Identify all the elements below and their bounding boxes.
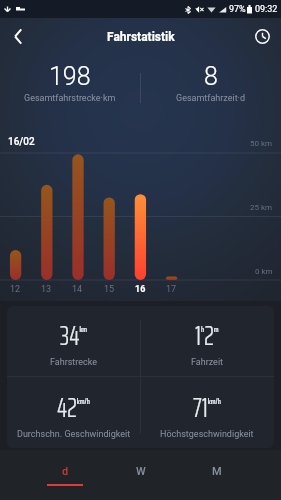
- staticText: 15: [104, 284, 115, 295]
- staticText: 34km: [60, 314, 88, 356]
- staticText: 8: [204, 62, 218, 91]
- staticText: 09:32: [255, 4, 278, 15]
- staticText: 25 km: [250, 203, 273, 212]
- staticText: Fahrstrecke: [50, 357, 98, 368]
- staticText: Gesamtfahrzeit·d: [176, 93, 246, 104]
- staticText: 14: [72, 284, 83, 295]
- staticText: Durchschn. Geschwindigkeit: [17, 429, 131, 440]
- button[interactable]: 1h2m: [140, 306, 274, 376]
- staticText: Höchstgeschwindigkeit: [160, 429, 254, 440]
- staticText: 13: [41, 284, 52, 295]
- staticText: 0 km: [255, 267, 273, 276]
- button[interactable]: History: [244, 18, 281, 55]
- staticText: d: [62, 465, 69, 478]
- button[interactable]: d: [26, 450, 103, 500]
- staticText: Fahrstatistik: [107, 30, 175, 44]
- staticText: 71km/h: [193, 386, 221, 428]
- button[interactable]: Back: [0, 18, 37, 55]
- staticText: 42km/h: [57, 386, 90, 428]
- staticText: 198: [49, 62, 91, 91]
- staticText: M: [212, 465, 222, 478]
- staticText: W: [136, 465, 146, 478]
- button[interactable]: 34km: [7, 306, 140, 376]
- button[interactable]: 42km/h: [7, 377, 140, 448]
- staticText: 17: [166, 284, 177, 295]
- button[interactable]: M: [179, 450, 255, 500]
- staticText: 97%: [229, 4, 246, 15]
- staticText: 16: [135, 284, 146, 295]
- staticText: 1h2m: [195, 314, 219, 356]
- staticText: Fahrzeit: [191, 357, 224, 368]
- staticText: Gesamtfahrstrecke·km: [24, 93, 116, 104]
- button[interactable]: 8: [140, 62, 281, 112]
- staticText: 12: [10, 284, 21, 295]
- staticText: 16/02: [8, 136, 35, 148]
- button[interactable]: 198: [0, 62, 140, 112]
- button[interactable]: W: [103, 450, 179, 500]
- button[interactable]: 71km/h: [140, 377, 274, 448]
- staticText: 50 km: [250, 139, 273, 148]
